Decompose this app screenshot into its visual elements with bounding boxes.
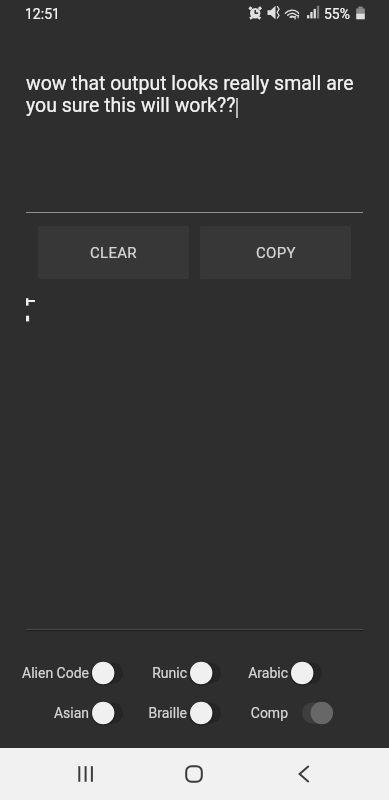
- staticText: Asian: [2, 705, 89, 721]
- staticText: Alien Code: [2, 665, 89, 681]
- staticText: Runic: [100, 665, 187, 681]
- staticText: Comp: [201, 705, 288, 721]
- button[interactable]: Arabic: [201, 658, 327, 688]
- button[interactable]: Asian: [2, 698, 128, 728]
- button[interactable]: Recent apps: [32, 748, 140, 800]
- button[interactable]: Comp: [201, 698, 327, 728]
- staticText: 55%: [324, 6, 350, 22]
- staticText: COPY: [256, 244, 296, 262]
- staticText: 12:51: [25, 6, 60, 22]
- staticText: Braille: [100, 705, 187, 721]
- button[interactable]: Back: [249, 748, 358, 800]
- staticText: Arabic: [201, 665, 288, 681]
- button[interactable]: COPY: [200, 226, 351, 279]
- staticText: wow that output looks really small are y…: [26, 72, 363, 117]
- button[interactable]: Home: [140, 748, 248, 800]
- button[interactable]: Runic: [100, 658, 226, 688]
- button[interactable]: Braille: [100, 698, 226, 728]
- button[interactable]: CLEAR: [38, 226, 189, 279]
- staticText: CLEAR: [90, 244, 137, 262]
- button[interactable]: Alien Code: [2, 658, 128, 688]
